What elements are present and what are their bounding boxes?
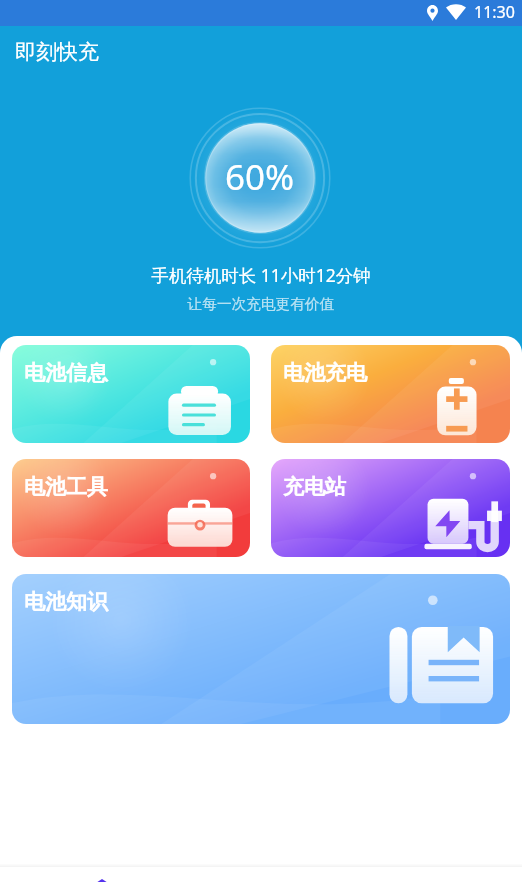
button[interactable]: Home <box>0 867 130 882</box>
button[interactable]: 充电站 <box>271 459 510 557</box>
button[interactable]: 电池信息 <box>12 345 250 443</box>
staticText: 电池充电 <box>283 360 367 386</box>
button[interactable]: 电池充电 <box>271 345 510 443</box>
staticText: 11:30 <box>474 1 515 23</box>
staticText: 手机待机时长 11小时12分钟 <box>0 263 522 287</box>
button[interactable]: 电池工具 <box>12 459 250 557</box>
button[interactable]: 电池知识 <box>12 574 510 724</box>
staticText: 电池知识 <box>24 589 108 615</box>
staticText: 即刻快充 <box>15 39 99 65</box>
staticText: 让每一次充电更有价值 <box>0 295 522 314</box>
staticText: 电池工具 <box>24 474 108 500</box>
staticText: 电池信息 <box>24 360 108 386</box>
staticText: 充电站 <box>283 474 346 500</box>
staticText: 60% <box>225 153 295 201</box>
